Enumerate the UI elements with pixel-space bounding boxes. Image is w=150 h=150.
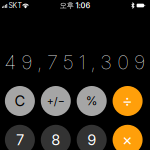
staticText: SKT (8, 1, 21, 10)
button[interactable]: +/− (41, 86, 71, 116)
staticText: 49,751,309 (4, 50, 145, 74)
staticText: × (122, 130, 133, 149)
button[interactable]: ÷ (113, 86, 143, 116)
staticText: ÷ (122, 91, 133, 111)
staticText: % (86, 94, 98, 108)
button[interactable]: % (77, 86, 107, 116)
staticText: 8 (51, 131, 60, 149)
button[interactable]: 9 (77, 125, 107, 150)
button[interactable]: × (113, 125, 143, 150)
staticText: 9 (87, 131, 96, 149)
staticText: 7 (16, 131, 24, 149)
button[interactable]: C (5, 86, 35, 116)
button[interactable]: 8 (41, 125, 71, 150)
staticText: 오후 1:06 (59, 1, 90, 10)
button[interactable]: 7 (5, 125, 35, 150)
staticText: +/− (47, 94, 65, 107)
staticText: C (14, 92, 25, 110)
